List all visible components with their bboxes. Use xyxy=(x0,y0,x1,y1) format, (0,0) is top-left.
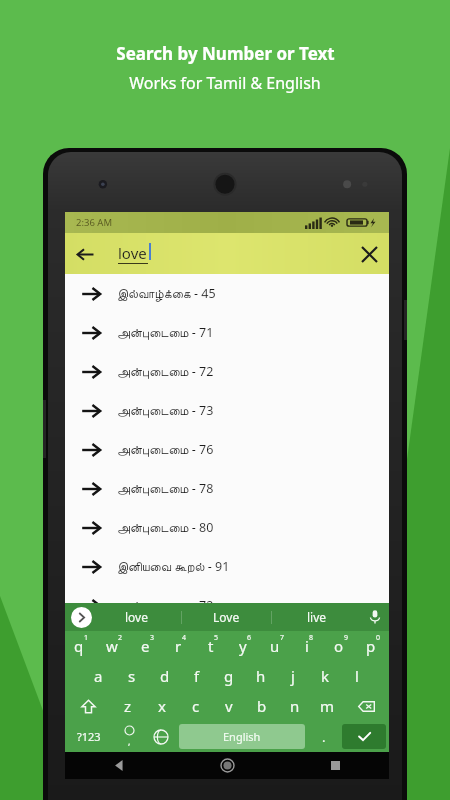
button[interactable]: g xyxy=(213,661,245,691)
button[interactable]: அன்புடைமை - 80 xyxy=(65,508,389,547)
button[interactable]: அன்புடைமை - 72 xyxy=(65,352,389,391)
button[interactable]: b xyxy=(245,691,278,721)
button[interactable]: அன்புடைமை - 72 xyxy=(65,586,389,625)
button[interactable]: q xyxy=(65,631,98,661)
button[interactable]: அன்புடைமை - 78 xyxy=(65,469,389,508)
button[interactable]: இனியவை கூறல் - 91 xyxy=(65,547,389,586)
staticText: அன்புடைமை - 71 xyxy=(117,324,214,341)
button[interactable]: Home xyxy=(173,752,281,779)
button[interactable]: y xyxy=(229,631,261,661)
button[interactable]: live xyxy=(272,603,361,631)
button[interactable]: w xyxy=(98,631,131,661)
button[interactable]: v xyxy=(212,691,245,721)
button[interactable]: love xyxy=(92,603,181,631)
staticText: c xyxy=(192,696,200,716)
button[interactable]: d xyxy=(148,661,181,691)
staticText: English xyxy=(223,729,261,744)
staticText: 4 xyxy=(182,633,187,643)
button[interactable]: c xyxy=(179,691,212,721)
staticText: m xyxy=(320,696,335,716)
staticText: q xyxy=(74,636,84,656)
staticText: n xyxy=(290,696,300,716)
button[interactable]: இல்வாழ்க்கை - 45 xyxy=(65,274,389,313)
button[interactable]: Voice input xyxy=(361,603,389,631)
staticText: b xyxy=(257,696,267,716)
staticText: 9 xyxy=(344,633,349,643)
button[interactable]: l xyxy=(341,661,373,691)
staticText: 0 xyxy=(376,633,381,643)
staticText: 6 xyxy=(247,633,252,643)
button[interactable]: f xyxy=(181,661,213,691)
button[interactable]: அன்புடைமை - 76 xyxy=(65,430,389,469)
staticText: அன்புடைமை - 78 xyxy=(117,480,214,497)
staticText: o xyxy=(334,636,344,656)
button[interactable]: Change language xyxy=(145,721,176,752)
staticText: p xyxy=(366,636,376,656)
staticText: . xyxy=(322,728,326,746)
staticText: y xyxy=(239,636,247,656)
button[interactable]: Enter xyxy=(342,724,386,749)
staticText: g xyxy=(224,666,234,686)
staticText: z xyxy=(124,696,132,716)
button[interactable]: Expand suggestions xyxy=(71,607,92,628)
staticText: j xyxy=(291,666,295,686)
staticText: 1 xyxy=(84,633,89,643)
staticText: அன்புடைமை - 72 xyxy=(117,363,214,380)
staticText: 7 xyxy=(280,633,285,643)
staticText: x xyxy=(158,696,166,716)
button[interactable]: அன்புடைமை - 71 xyxy=(65,313,389,352)
button[interactable]: Backspace xyxy=(344,691,389,721)
staticText: d xyxy=(160,666,170,686)
button[interactable]: u xyxy=(261,631,293,661)
staticText: love xyxy=(118,243,147,263)
staticText: 2:36 AM xyxy=(76,216,113,229)
button[interactable]: j xyxy=(277,661,309,691)
staticText: live xyxy=(307,609,327,625)
button[interactable]: s xyxy=(115,661,148,691)
button[interactable]: ?123 xyxy=(65,721,113,752)
button[interactable]: t xyxy=(197,631,229,661)
staticText: t xyxy=(208,636,214,656)
staticText: k xyxy=(321,666,330,686)
staticText: Love xyxy=(213,609,240,625)
button[interactable]: Shift xyxy=(65,691,111,721)
staticText: w xyxy=(106,636,118,656)
staticText: f xyxy=(194,666,200,686)
staticText: Works for Tamil & English xyxy=(129,72,321,94)
button[interactable]: h xyxy=(245,661,277,691)
staticText: Search by Number or Text xyxy=(116,42,335,65)
staticText: அன்புடைமை - 72 xyxy=(117,597,214,614)
staticText: v xyxy=(225,696,233,716)
staticText: 8 xyxy=(309,633,314,643)
button[interactable]: அன்புடைமை - 73 xyxy=(65,391,389,430)
button[interactable]: k xyxy=(309,661,341,691)
staticText: love xyxy=(125,609,148,625)
staticText: r xyxy=(175,636,182,656)
button[interactable]: x xyxy=(145,691,179,721)
button[interactable]: i xyxy=(293,631,325,661)
button[interactable]: z xyxy=(111,691,145,721)
button[interactable]: a xyxy=(82,661,115,691)
button[interactable]: e xyxy=(131,631,164,661)
staticText: ?123 xyxy=(77,729,101,744)
staticText: அன்புடைமை - 73 xyxy=(117,402,214,419)
button[interactable]: Emoji xyxy=(113,721,145,752)
button[interactable]: Clear xyxy=(349,234,389,274)
button[interactable]: English xyxy=(179,724,305,749)
button[interactable]: r xyxy=(164,631,197,661)
button[interactable]: Love xyxy=(182,603,271,631)
button[interactable]: Back xyxy=(65,234,105,274)
button[interactable]: Back xyxy=(65,752,173,779)
button[interactable]: n xyxy=(278,691,311,721)
staticText: a xyxy=(94,666,103,686)
button[interactable]: o xyxy=(325,631,357,661)
staticText: இல்வாழ்க்கை - 45 xyxy=(117,285,216,302)
staticText: i xyxy=(305,636,309,656)
staticText: s xyxy=(128,666,136,686)
staticText: e xyxy=(141,636,150,656)
button[interactable]: Recents xyxy=(281,752,389,779)
button[interactable]: . xyxy=(308,721,339,752)
button[interactable]: p xyxy=(357,631,389,661)
staticText: 5 xyxy=(214,633,219,643)
button[interactable]: m xyxy=(311,691,344,721)
